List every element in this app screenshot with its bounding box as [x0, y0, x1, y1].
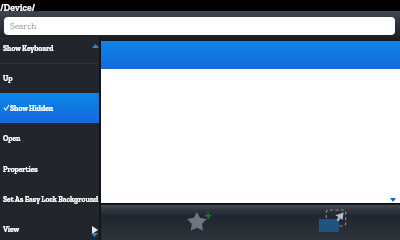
staticText: Show Keyboard [3, 44, 54, 53]
staticText: /Device/ [0, 2, 36, 13]
button[interactable]: Show Hidden [0, 93, 99, 123]
button[interactable] [0, 41, 400, 69]
staticText: Properties [3, 165, 38, 174]
button[interactable]: View [0, 214, 99, 240]
staticText: Open [3, 134, 21, 143]
button[interactable]: Select items [316, 205, 350, 237]
staticText: View [3, 225, 20, 234]
staticText: Set As Easy Lock Background [3, 195, 99, 204]
button[interactable]: Up [0, 63, 99, 93]
button[interactable]: Set As Easy Lock Background [0, 184, 99, 214]
button[interactable]: Add bookmark [184, 203, 214, 233]
button[interactable]: Properties [0, 154, 99, 184]
button[interactable]: Open [0, 123, 99, 153]
staticText: Show Hidden [10, 104, 54, 113]
staticText: Search [10, 21, 37, 32]
button[interactable]: Show Keyboard [0, 37, 99, 63]
button[interactable]: Search [4, 17, 395, 35]
staticText: Up [3, 74, 13, 83]
